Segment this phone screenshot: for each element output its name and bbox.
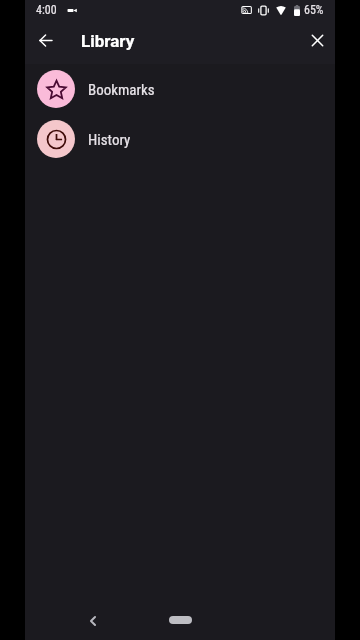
- button[interactable]: History: [25, 114, 335, 164]
- staticText: 65%: [304, 3, 324, 17]
- staticText: 4:00: [36, 3, 57, 17]
- staticText: History: [88, 131, 131, 149]
- button[interactable]: Close: [297, 24, 337, 57]
- button[interactable]: Back: [26, 24, 66, 57]
- button[interactable]: Bookmarks: [25, 64, 335, 114]
- staticText: Bookmarks: [88, 81, 155, 99]
- button[interactable]: Home: [169, 616, 192, 624]
- staticText: Library: [81, 31, 135, 51]
- button[interactable]: Back: [77, 605, 109, 637]
